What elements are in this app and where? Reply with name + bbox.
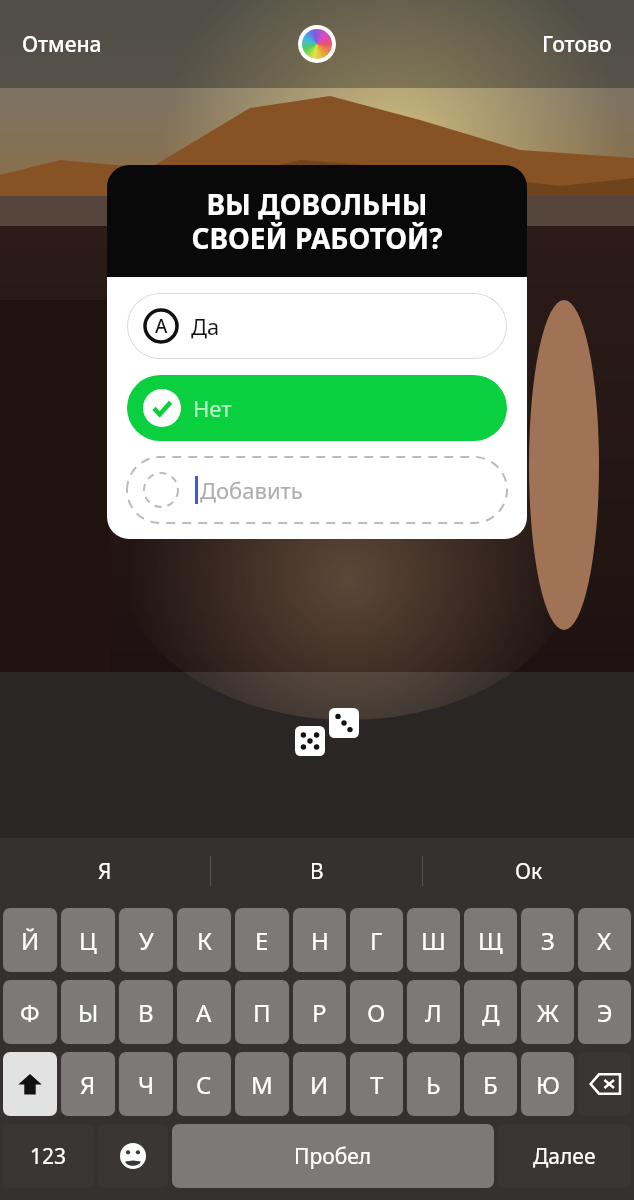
staticText: Я [98,857,112,886]
staticText: Пробел [294,1142,372,1171]
button[interactable]: 123 [3,1124,94,1188]
button[interactable]: Ок [423,838,634,904]
button[interactable]: Ь [407,1052,460,1116]
button[interactable]: Отмена [10,22,114,67]
button[interactable]: Пробел [172,1124,494,1188]
button[interactable]: Готово [530,22,624,67]
button[interactable]: С [177,1052,231,1116]
staticText: Й [21,924,40,957]
staticText: Н [311,924,329,957]
staticText: У [139,924,154,957]
button[interactable]: Backspace [578,1052,631,1116]
staticText: Т [370,1068,384,1101]
staticText: Я [80,1068,96,1101]
staticText: С [196,1068,212,1101]
staticText: Добавить [200,475,303,505]
staticText: Р [312,996,327,1029]
button[interactable]: А [177,980,231,1044]
button[interactable]: Г [350,908,403,972]
staticText: А [196,996,212,1029]
button[interactable]: И [293,1052,346,1116]
staticText: Ок [515,857,543,886]
button[interactable]: Я [0,838,210,904]
button[interactable]: Т [350,1052,403,1116]
button[interactable]: Х [578,908,631,972]
button[interactable]: Случайный выбор [289,700,345,744]
button[interactable]: Ц [61,908,115,972]
staticText: Ш [421,924,446,957]
button[interactable]: Эмодзи [98,1124,168,1188]
staticText: Отмена [22,30,102,59]
button[interactable]: В [119,980,173,1044]
staticText: И [310,1068,329,1101]
staticText: Г [370,924,383,957]
staticText: Ю [536,1068,560,1101]
staticText: Готово [542,30,612,59]
staticText: Щ [478,924,503,957]
staticText: Х [597,924,612,957]
staticText: Д [482,996,500,1029]
staticText: Ф [20,996,40,1029]
staticText: Л [425,996,442,1029]
button[interactable]: Е [235,908,289,972]
button[interactable]: У [119,908,173,972]
button[interactable]: К [177,908,231,972]
staticText: 123 [30,1142,67,1171]
button[interactable]: З [521,908,574,972]
staticText: Далее [533,1142,596,1171]
button[interactable]: Выбор цвета [295,22,339,66]
staticText: В [138,996,154,1029]
button[interactable]: Р [293,980,346,1044]
staticText: Да [191,311,220,341]
staticText: К [197,924,212,957]
staticText: Э [597,996,613,1029]
button[interactable]: Н [293,908,346,972]
staticText: Е [255,924,269,957]
button[interactable]: A [127,293,507,359]
button[interactable]: Ш [407,908,460,972]
staticText: М [251,1068,273,1101]
button[interactable]: Shift [3,1052,57,1116]
staticText: Нет [193,393,232,423]
staticText: Ы [78,996,99,1029]
staticText: Б [483,1068,498,1101]
button[interactable]: Нет [127,375,507,441]
button[interactable]: Б [464,1052,517,1116]
button[interactable]: Э [578,980,631,1044]
button[interactable]: М [235,1052,289,1116]
button[interactable]: Ж [521,980,574,1044]
staticText: Ц [79,924,97,957]
staticText: ВЫ ДОВОЛЬНЫ СВОЕЙ РАБОТОЙ? [191,185,443,257]
button[interactable]: Ч [119,1052,173,1116]
staticText: В [310,857,324,886]
button[interactable]: Добавить [127,457,507,523]
button[interactable]: В [211,838,422,904]
staticText: Ь [426,1068,441,1101]
staticText: A [155,313,168,339]
button[interactable]: Д [464,980,517,1044]
staticText: Ч [138,1068,155,1101]
staticText: Ж [537,996,559,1029]
button[interactable]: Й [3,908,57,972]
staticText: П [253,996,271,1029]
button[interactable]: Л [407,980,460,1044]
button[interactable]: Ф [3,980,57,1044]
button[interactable]: Я [61,1052,115,1116]
staticText: З [541,924,555,957]
staticText: О [367,996,386,1029]
button[interactable]: Ы [61,980,115,1044]
button[interactable]: Щ [464,908,517,972]
button[interactable]: Ю [521,1052,574,1116]
button[interactable]: Далее [498,1124,631,1188]
button[interactable]: П [235,980,289,1044]
button[interactable]: О [350,980,403,1044]
